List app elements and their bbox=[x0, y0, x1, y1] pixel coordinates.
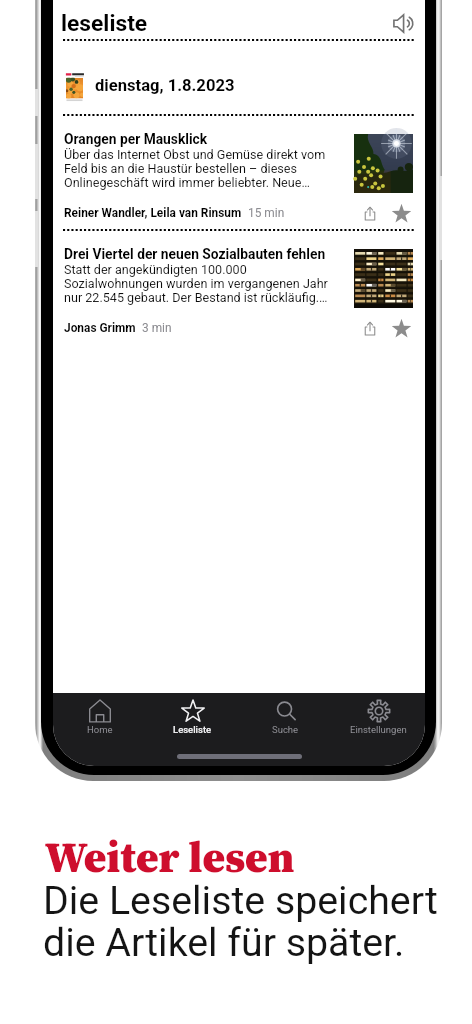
button[interactable]: Leseliste bbox=[146, 699, 239, 735]
staticText: Home bbox=[87, 724, 113, 735]
staticText: Leseliste bbox=[173, 724, 212, 735]
staticText: Drei Viertel der neuen Sozialbauten fehl… bbox=[64, 246, 326, 262]
staticText: Reiner Wandler, Leila van Rinsum bbox=[64, 206, 242, 220]
staticText: Die Leseliste speichert die Artikel für … bbox=[43, 878, 438, 965]
staticText: Statt der angekündigten 100.000 Sozialwo… bbox=[64, 262, 347, 305]
button[interactable]: Merken bbox=[391, 201, 415, 225]
button[interactable]: Einstellungen bbox=[332, 699, 425, 735]
staticText: leseliste bbox=[61, 10, 148, 37]
staticText: Weiter lesen bbox=[45, 827, 295, 886]
button[interactable]: Drei Viertel der neuen Sozialbauten fehl… bbox=[53, 231, 425, 344]
staticText: Suche bbox=[272, 724, 299, 735]
button[interactable]: Merken bbox=[391, 316, 415, 340]
button[interactable]: Vorlesen bbox=[393, 12, 416, 35]
staticText: 15 min bbox=[248, 206, 285, 220]
staticText: Jonas Grimm bbox=[64, 321, 136, 335]
button[interactable]: Teilen bbox=[359, 202, 381, 224]
button[interactable]: Home bbox=[53, 699, 146, 735]
button[interactable]: Suche bbox=[239, 699, 332, 735]
staticText: Einstellungen bbox=[350, 724, 407, 735]
button[interactable]: Orangen per Mausklick bbox=[53, 116, 425, 229]
button[interactable]: Teilen bbox=[359, 317, 381, 339]
staticText: Orangen per Mausklick bbox=[64, 131, 208, 147]
staticText: 3 min bbox=[142, 321, 172, 335]
staticText: dienstag, 1.8.2023 bbox=[95, 76, 235, 95]
staticText: Über das Internet Obst und Gemüse direkt… bbox=[64, 147, 347, 190]
